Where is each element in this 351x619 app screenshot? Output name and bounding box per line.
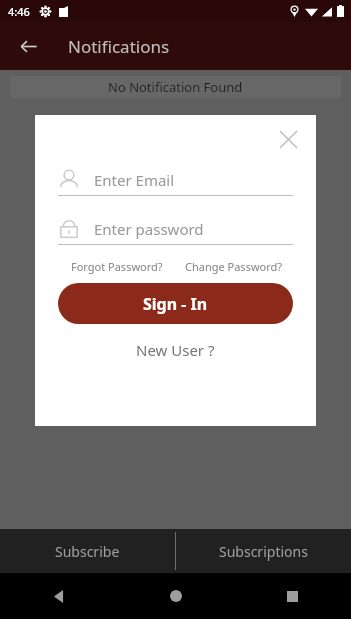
staticText: New User ? [136, 340, 215, 360]
button[interactable]: Subscribe [0, 529, 175, 573]
staticText: Sign - In [143, 293, 208, 315]
staticText: Enter Email [94, 170, 175, 190]
button[interactable]: Enter Email [58, 169, 293, 196]
staticText: Notifications [68, 35, 170, 58]
staticText: 4:46 [8, 4, 30, 19]
button[interactable]: Home [117, 573, 234, 619]
button[interactable]: Forgot Password? [59, 259, 175, 274]
button[interactable]: Back [10, 28, 46, 64]
button[interactable]: Sign - In [58, 283, 293, 324]
staticText: Subscriptions [219, 542, 308, 561]
button[interactable]: Recents [234, 573, 351, 619]
staticText: No Notification Found [108, 78, 243, 96]
staticText: Subscribe [55, 542, 120, 561]
staticText: Enter password [94, 219, 204, 239]
button[interactable]: Enter password [58, 218, 293, 245]
staticText: Forgot Password? [71, 259, 163, 274]
button[interactable]: Close [272, 123, 304, 155]
button[interactable]: No Notification Found [10, 76, 341, 98]
button[interactable]: New User ? [35, 340, 316, 360]
staticText: Change Password? [185, 259, 283, 274]
button[interactable]: Back [0, 573, 117, 619]
button[interactable]: Change Password? [175, 259, 292, 274]
button[interactable]: Subscriptions [176, 529, 351, 573]
